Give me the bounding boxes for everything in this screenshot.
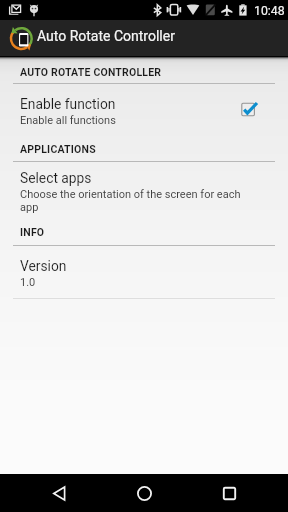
staticText: Enable function	[20, 96, 116, 112]
button[interactable]: Recent apps	[203, 474, 255, 512]
button[interactable]: Enable function checkbox	[233, 99, 267, 129]
staticText: INFO	[20, 226, 45, 238]
staticText: Choose the orientation of the screen for…	[20, 188, 247, 214]
staticText: Enable all functions	[20, 114, 247, 127]
staticText: Version	[20, 258, 67, 274]
button[interactable]	[0, 86, 288, 132]
staticText: Auto Rotate Controller	[37, 28, 175, 44]
staticText: APPLICATIONS	[20, 143, 96, 155]
button[interactable]: Home	[118, 474, 170, 512]
staticText: 10:48	[254, 4, 285, 18]
staticText: AUTO ROTATE CONTROLLER	[20, 66, 162, 78]
staticText: Select apps	[20, 170, 92, 186]
staticText: 1.0	[20, 276, 247, 289]
button[interactable]	[0, 249, 288, 297]
button[interactable]: Back	[33, 474, 85, 512]
button[interactable]	[0, 164, 288, 216]
